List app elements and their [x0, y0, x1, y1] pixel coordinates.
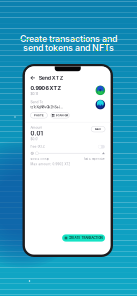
staticText: Send To [30, 100, 43, 104]
button[interactable]: CREATE TRANSACTION [62, 234, 105, 242]
staticText: Amount [30, 126, 42, 129]
staticText: fast & expensive [84, 157, 105, 161]
staticText: 0.01 [30, 130, 42, 137]
staticText: SCAN QR [55, 114, 68, 117]
staticText: Send XTZ [39, 75, 63, 81]
staticText: Create transactions and [20, 33, 117, 44]
button[interactable]: Custom fee [98, 145, 105, 149]
button[interactable]: MAX [91, 126, 105, 132]
staticText: 0.9906 XTZ [30, 85, 61, 91]
staticText: Fee (XTZ) [30, 145, 45, 149]
staticText: $0.01 [30, 137, 38, 141]
button[interactable]: SCAN QR [51, 112, 69, 118]
button[interactable]: PASTE [30, 112, 47, 118]
staticText: CREATE TRANSACTION [68, 236, 102, 240]
staticText: tz1cXgN8vQk2hSaJcqMyNtvsRY7NuaRc [30, 105, 63, 109]
staticText: MAX [95, 128, 101, 131]
staticText: send tokens and NFTs [23, 42, 114, 53]
button[interactable]: Send XTZ [25, 73, 111, 82]
staticText: $0.14 [30, 92, 38, 96]
staticText: PASTE [34, 114, 44, 117]
staticText: slow & cheap [30, 157, 49, 161]
staticText: Max amount: 0.9902 XTZ [30, 162, 70, 166]
